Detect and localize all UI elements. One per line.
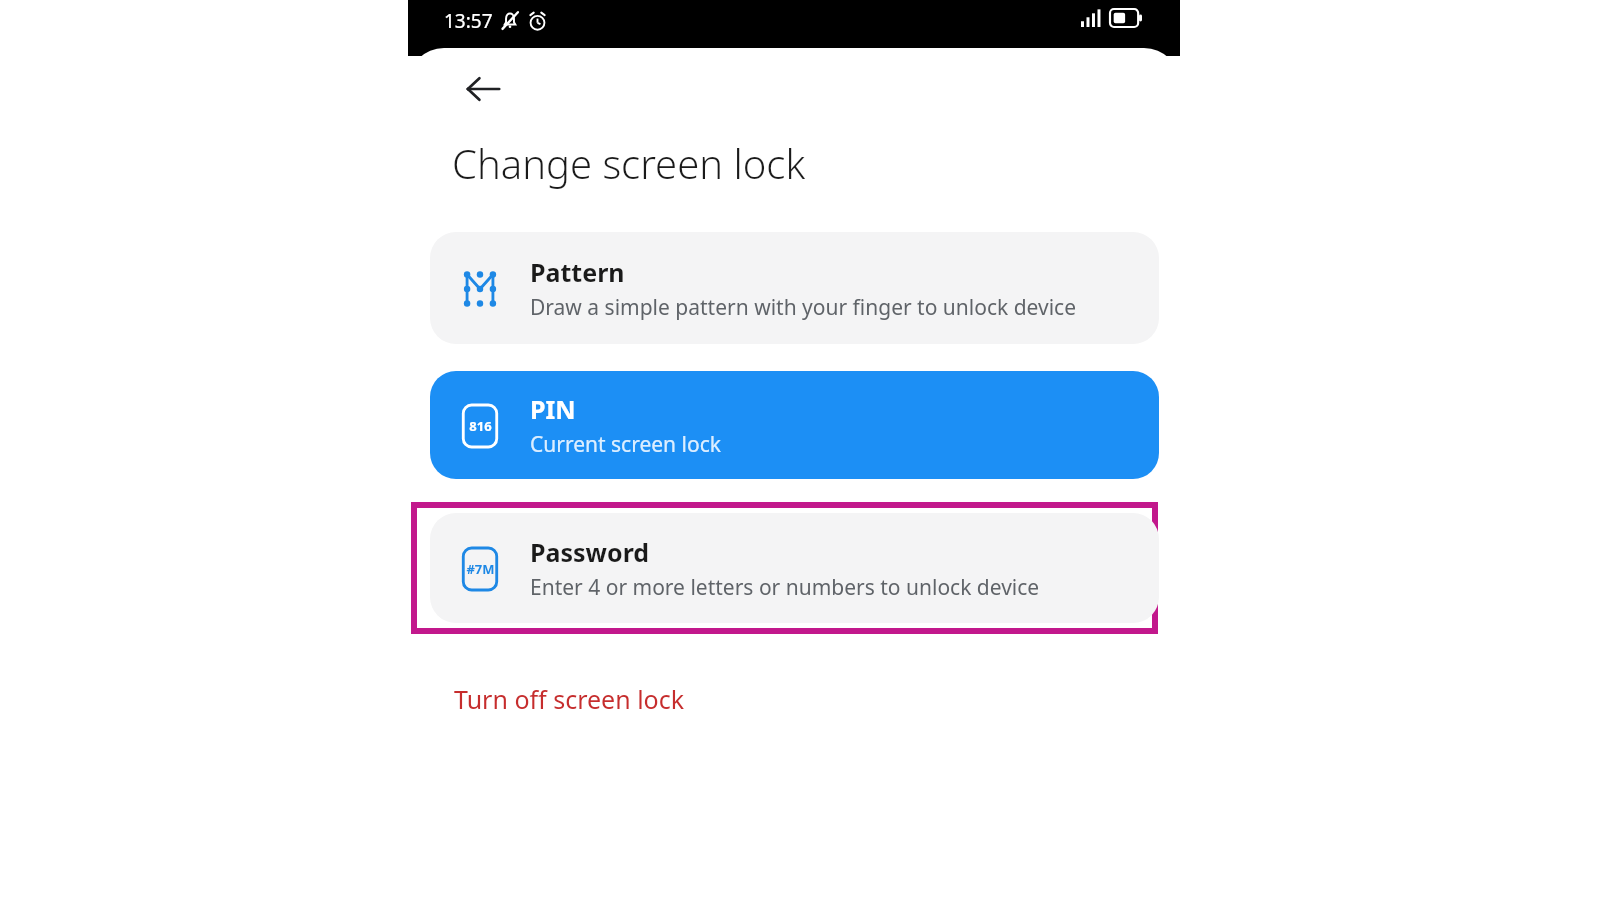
staticText: 13:57: [444, 8, 493, 34]
staticText: Password: [530, 535, 650, 569]
button[interactable]: Back: [452, 58, 514, 120]
staticText: 816: [469, 417, 492, 435]
button[interactable]: #7M: [430, 513, 1159, 623]
staticText: PIN: [530, 392, 576, 426]
staticText: Draw a simple pattern with your finger t…: [530, 293, 1077, 322]
button[interactable]: Turn off screen lock: [438, 672, 701, 726]
button[interactable]: Pattern: [430, 232, 1159, 344]
staticText: #7M: [466, 560, 495, 578]
staticText: Turn off screen lock: [454, 682, 685, 716]
staticText: Enter 4 or more letters or numbers to un…: [530, 573, 1040, 602]
staticText: Change screen lock: [452, 136, 806, 190]
button[interactable]: 816: [430, 371, 1159, 479]
staticText: Pattern: [530, 255, 625, 289]
staticText: Current screen lock: [530, 430, 721, 459]
